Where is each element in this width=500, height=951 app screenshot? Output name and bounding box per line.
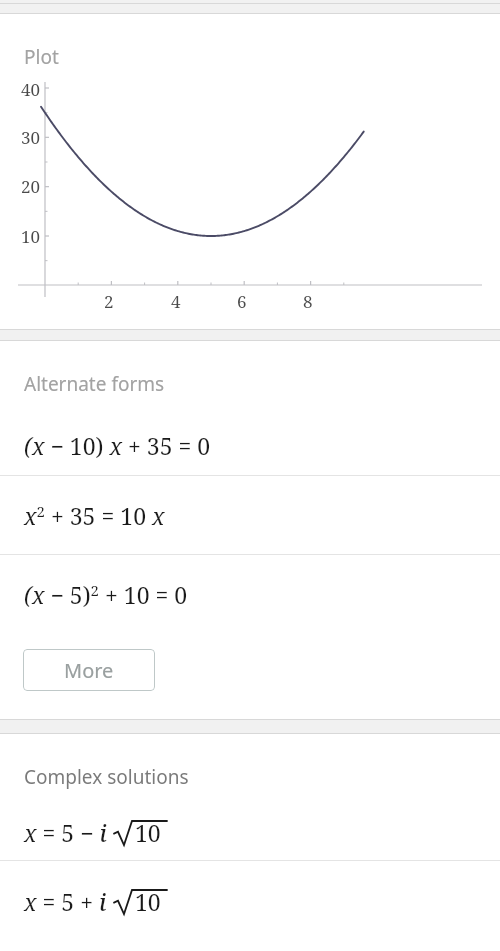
staticText: x2 + 35 = 10 x <box>24 500 165 531</box>
staticText: Alternate forms <box>24 371 165 397</box>
staticText: 8 <box>303 290 313 313</box>
staticText: 10 <box>135 886 161 917</box>
staticText: (x − 10) x + 35 = 0 <box>24 430 211 461</box>
button[interactable]: More <box>23 649 155 691</box>
staticText: 6 <box>237 290 247 313</box>
staticText: 40 <box>21 78 41 101</box>
staticText: 30 <box>21 126 41 149</box>
staticText: 10 <box>21 225 41 248</box>
staticText: x = 5 + i <box>24 886 113 917</box>
staticText: 20 <box>21 175 41 198</box>
staticText: 10 <box>135 817 161 848</box>
staticText: 2 <box>104 290 114 313</box>
staticText: (x − 5)2 + 10 = 0 <box>24 579 188 610</box>
staticText: More <box>64 657 114 684</box>
staticText: Plot <box>24 44 59 70</box>
staticText: Complex solutions <box>24 764 189 790</box>
staticText: x = 5 − i <box>24 817 113 848</box>
staticText: 4 <box>171 290 181 313</box>
